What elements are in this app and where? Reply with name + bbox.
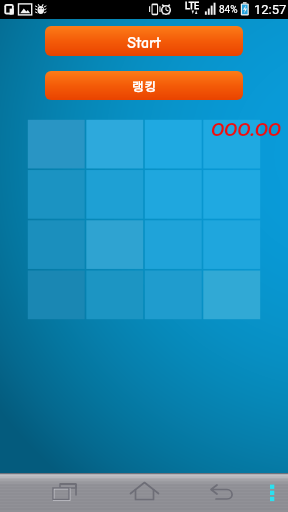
- button[interactable]: Tile 4,1: [27, 269, 86, 319]
- button[interactable]: 랭킹: [45, 71, 243, 100]
- button[interactable]: Recent apps: [40, 473, 90, 512]
- button[interactable]: Tile 4,2: [86, 269, 145, 319]
- button[interactable]: Tile 3,4: [204, 219, 261, 269]
- button[interactable]: Tile 3,1: [27, 219, 86, 269]
- button[interactable]: Back: [200, 473, 246, 512]
- staticText: Start: [127, 34, 161, 52]
- button[interactable]: Tile 3,3: [145, 219, 204, 269]
- button[interactable]: Tile 1,3: [145, 119, 204, 169]
- button[interactable]: Tile 1,1: [27, 119, 86, 169]
- button[interactable]: Tile 3,2: [86, 219, 145, 269]
- staticText: LTE: [185, 1, 200, 12]
- button[interactable]: Tile 1,4: [204, 119, 261, 169]
- button[interactable]: Tile 4,4: [204, 269, 261, 319]
- button[interactable]: Tile 2,3: [145, 169, 204, 219]
- staticText: 84%: [219, 4, 238, 16]
- button[interactable]: More options: [258, 473, 288, 512]
- button[interactable]: Tile 2,2: [86, 169, 145, 219]
- staticText: 랭킹: [132, 81, 156, 93]
- button[interactable]: Tile 2,1: [27, 169, 86, 219]
- button[interactable]: Tile 1,2: [86, 119, 145, 169]
- staticText: 12:57: [254, 2, 287, 17]
- button[interactable]: Home: [120, 473, 168, 512]
- button[interactable]: Start: [45, 26, 243, 56]
- staticText: 000.00: [211, 118, 281, 141]
- button[interactable]: Tile 2,4: [204, 169, 261, 219]
- button[interactable]: Tile 4,3: [145, 269, 204, 319]
